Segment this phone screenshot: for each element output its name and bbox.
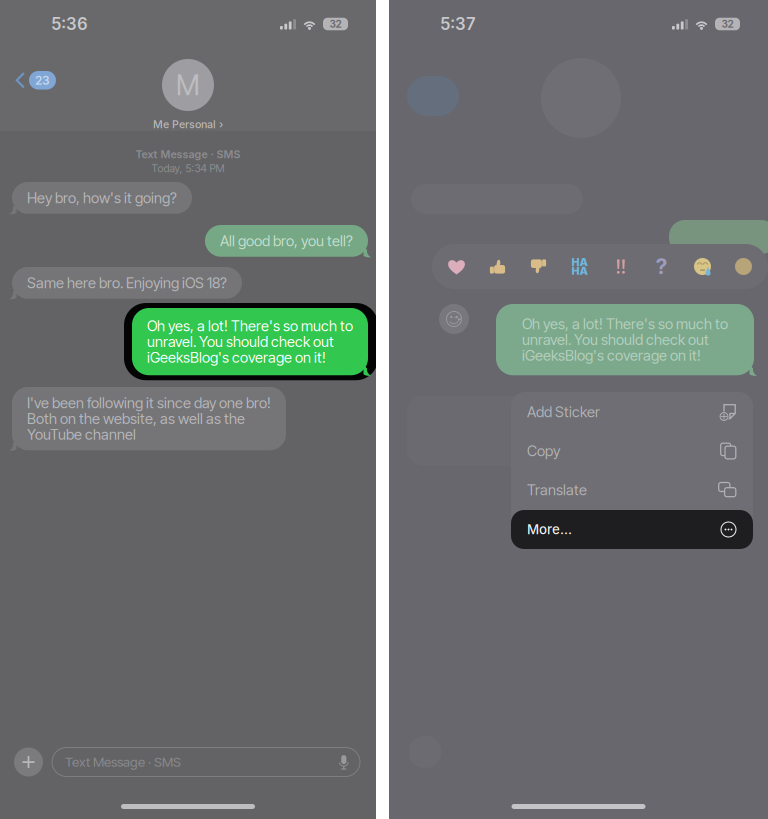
staticText: 32 <box>329 18 341 30</box>
staticText: M <box>176 68 200 102</box>
staticText: Text Message · SMS <box>135 148 240 161</box>
staticText: Add Sticker <box>527 403 600 421</box>
staticText: Hey bro, how's it going? <box>27 189 177 207</box>
button[interactable]: Exclamation <box>600 244 641 289</box>
button[interactable]: Oh yes, a lot! There's so much to <box>124 303 378 380</box>
button[interactable]: Sad <box>682 244 723 289</box>
button[interactable]: Add attachment <box>14 747 43 776</box>
staticText: Copy <box>527 442 560 460</box>
staticText: 23 <box>35 73 50 87</box>
staticText: ? <box>655 254 667 279</box>
staticText: HA <box>571 256 587 268</box>
staticText: Both on the website, as well as the <box>27 410 245 427</box>
staticText: 5:37 <box>440 14 476 34</box>
staticText: iGeeksBlog's coverage on it! <box>147 348 326 366</box>
staticText: Me Personal › <box>153 118 223 131</box>
staticText: Today, 5:34 PM <box>151 162 224 175</box>
staticText: YouTube channel <box>27 425 136 443</box>
staticText: More... <box>527 521 572 537</box>
button[interactable]: Question <box>641 244 682 289</box>
staticText: All good bro, you tell? <box>220 232 353 250</box>
button[interactable]: Add Sticker <box>511 392 753 431</box>
button[interactable]: Me Personal, contact details <box>128 59 248 131</box>
staticText: Translate <box>527 481 587 499</box>
button[interactable]: More reactions <box>723 244 764 289</box>
staticText: unravel. You should check out <box>147 333 334 350</box>
staticText: unravel. You should check out <box>522 331 709 348</box>
button[interactable]: Back, 23 unread messages <box>14 71 56 89</box>
staticText: Oh yes, a lot! There's so much to <box>147 317 353 335</box>
button[interactable]: Haha <box>559 244 600 289</box>
button[interactable]: Heart <box>436 244 477 289</box>
staticText: 5:36 <box>51 14 88 34</box>
staticText: Oh yes, a lot! There's so much to <box>522 315 728 333</box>
staticText: I've been following it since day one bro… <box>27 394 271 412</box>
button[interactable]: Thumbs down <box>518 244 559 289</box>
staticText: HA <box>571 264 587 277</box>
staticText: iGeeksBlog's coverage on it! <box>522 346 701 364</box>
button[interactable]: Translate <box>511 470 753 509</box>
button[interactable]: Thumbs up <box>477 244 518 289</box>
staticText: Same here bro. Enjoying iOS 18? <box>27 274 227 292</box>
button[interactable]: Copy <box>511 431 753 470</box>
staticText: Text Message · SMS <box>65 754 181 770</box>
staticText: 32 <box>721 18 733 30</box>
button[interactable]: More... <box>511 510 753 549</box>
